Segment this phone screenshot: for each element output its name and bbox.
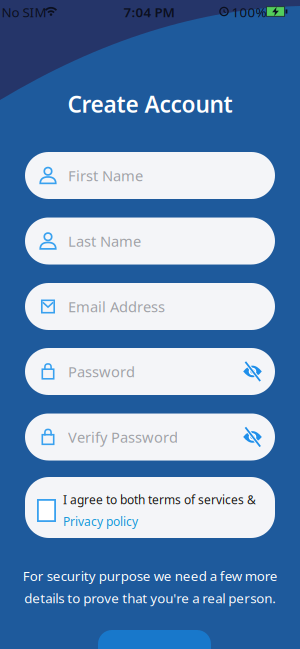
- button[interactable]: I agree to both terms of services &: [25, 477, 275, 538]
- button[interactable]: Email Address: [25, 283, 275, 330]
- staticText: Password: [68, 362, 135, 381]
- staticText: No SIM: [1, 3, 46, 21]
- button[interactable]: Show password: [243, 430, 262, 444]
- button[interactable]: Last Name: [25, 217, 275, 264]
- staticText: Email Address: [68, 297, 165, 316]
- button[interactable]: Password: [25, 348, 275, 395]
- staticText: Privacy policy: [63, 513, 138, 529]
- button[interactable]: Show password: [243, 364, 262, 379]
- staticText: Create Account: [67, 89, 232, 119]
- staticText: 100%: [231, 3, 266, 21]
- button[interactable]: Sign Up: [98, 630, 211, 649]
- staticText: 7:04 PM: [123, 3, 174, 21]
- button[interactable]: First Name: [25, 152, 275, 199]
- staticText: First Name: [68, 166, 143, 185]
- staticText: I agree to both terms of services &: [63, 492, 256, 507]
- staticText: Verify Password: [68, 427, 178, 447]
- staticText: Last Name: [68, 231, 141, 251]
- staticText: For security purpose we need a few more …: [22, 567, 277, 607]
- button[interactable]: Verify Password: [25, 413, 275, 460]
